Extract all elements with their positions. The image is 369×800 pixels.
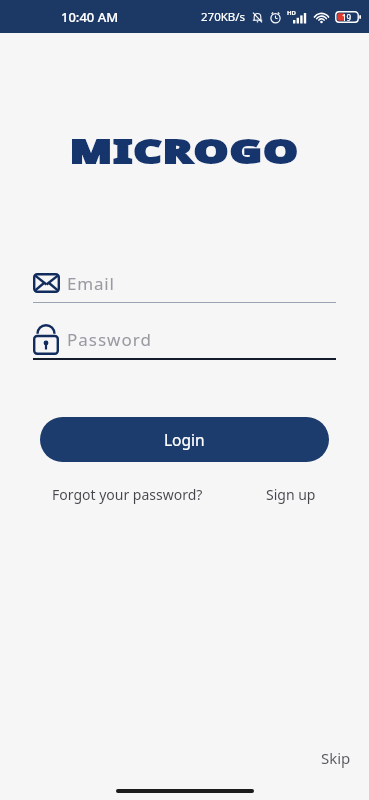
staticText: MICROGO (0, 129, 369, 173)
button[interactable]: Forgot your password? (52, 485, 203, 504)
staticText: Skip (321, 748, 351, 768)
staticText: 10:40 AM (61, 8, 119, 26)
staticText: 270KB/s (201, 9, 246, 25)
button[interactable]: Skip (321, 748, 351, 768)
staticText: Sign up (266, 485, 316, 504)
staticText: MICROGO (0, 129, 369, 173)
staticText: Forgot your password? (52, 485, 203, 504)
staticText: Email (67, 272, 115, 295)
staticText: HD (287, 9, 296, 17)
button[interactable]: Password (33, 324, 336, 354)
staticText: Login (164, 429, 205, 450)
staticText: Password (67, 328, 152, 351)
button[interactable]: Sign up (266, 485, 316, 504)
button[interactable]: Login (40, 417, 329, 462)
staticText: 19 (342, 12, 352, 23)
button[interactable]: Email (33, 268, 336, 299)
